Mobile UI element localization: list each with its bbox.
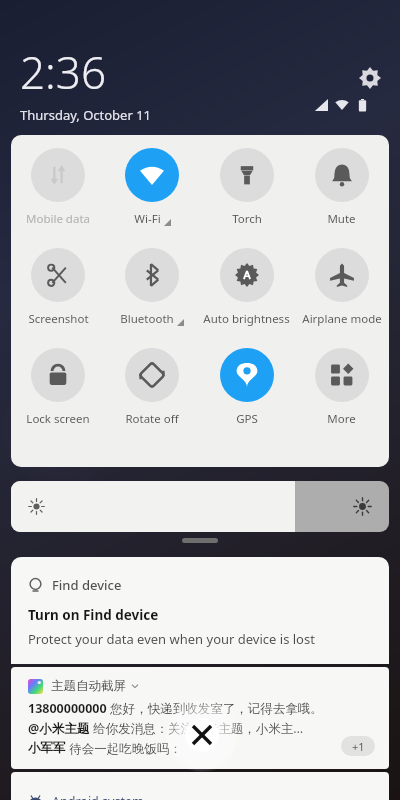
- staticText: +1: [352, 739, 365, 754]
- button[interactable]: Screenshot: [11, 248, 105, 348]
- staticText: 您好，快递到收发室了，记得去拿哦。: [107, 700, 323, 717]
- staticText: 主题自动截屏: [51, 678, 126, 694]
- button[interactable]: Torch: [199, 148, 294, 248]
- staticText: Protect your data even when your device …: [28, 630, 315, 648]
- staticText: 小军军: [28, 740, 66, 756]
- staticText: Torch: [232, 211, 262, 227]
- button[interactable]: Settings: [354, 62, 386, 94]
- button[interactable]: +1: [341, 736, 375, 756]
- staticText: Mobile data: [26, 211, 90, 227]
- button[interactable]: Brightness: [11, 481, 389, 532]
- staticText: Mute: [327, 211, 356, 227]
- staticText: @小米主题: [28, 720, 90, 737]
- staticText: Thursday, October 11: [20, 106, 152, 124]
- staticText: Turn on Find device: [28, 606, 159, 624]
- staticText: 13800000000: [28, 700, 107, 717]
- staticText: Find device: [52, 576, 122, 594]
- staticText: 给你发消息：关注小米主题，小米主…: [90, 720, 304, 737]
- button[interactable]: Mobile data: [11, 148, 105, 248]
- button[interactable]: Rotate off: [105, 348, 199, 448]
- button[interactable]: Find device: [11, 557, 389, 664]
- staticText: Screenshot: [28, 311, 89, 327]
- staticText: Auto brightness: [203, 311, 290, 327]
- staticText: 待会一起吃晚饭吗：: [66, 740, 182, 757]
- button[interactable]: Dismiss: [172, 705, 232, 765]
- button[interactable]: 主题自动截屏: [11, 667, 389, 769]
- button[interactable]: Airplane mode: [294, 248, 389, 348]
- button[interactable]: Bluetooth: [105, 248, 199, 348]
- staticText: GPS: [236, 411, 258, 427]
- staticText: Android system: [52, 793, 144, 800]
- button[interactable]: Mute: [294, 148, 389, 248]
- button[interactable]: More: [294, 348, 389, 448]
- button[interactable]: Auto brightness: [199, 248, 294, 348]
- staticText: 2:36: [20, 42, 107, 102]
- button[interactable]: Lock screen: [11, 348, 105, 448]
- staticText: Bluetooth: [120, 311, 174, 327]
- staticText: Airplane mode: [302, 311, 382, 327]
- staticText: More: [327, 411, 356, 427]
- staticText: Lock screen: [26, 411, 90, 427]
- button[interactable]: Wi-Fi: [105, 148, 199, 248]
- button[interactable]: Android system: [11, 772, 389, 800]
- staticText: Rotate off: [125, 411, 179, 427]
- button[interactable]: GPS: [199, 348, 294, 448]
- staticText: Wi-Fi: [134, 211, 161, 227]
